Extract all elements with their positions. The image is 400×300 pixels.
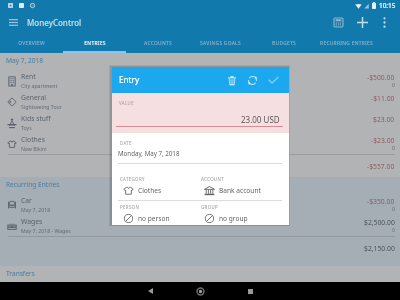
staticText: -$23.00 <box>371 136 395 145</box>
staticText: Clothes <box>138 186 162 195</box>
staticText: Sightseeing Tour <box>21 103 62 110</box>
button[interactable]: Save entry <box>263 70 284 91</box>
button[interactable]: Navigation menu <box>5 14 22 31</box>
button[interactable]: Car <box>0 194 400 215</box>
staticText: ACCOUNTS <box>144 40 172 47</box>
button[interactable]: Wages <box>0 215 400 236</box>
staticText: 10:15 <box>379 1 396 10</box>
button[interactable]: Delete entry <box>221 70 242 91</box>
staticText: May 7, 2018 - Wages <box>21 227 71 234</box>
button[interactable]: SAVINGS GOALS <box>189 34 252 53</box>
staticText: no group <box>219 214 248 223</box>
staticText: General <box>21 93 47 102</box>
staticText: no person <box>138 214 170 223</box>
staticText: RECURRING ENTRIES <box>320 40 373 47</box>
staticText: VALUE <box>119 100 134 106</box>
staticText: BUDGETS <box>272 40 296 47</box>
staticText: City apartment <box>21 82 58 89</box>
staticText: Toys <box>21 124 32 131</box>
staticText: $2,150.00 <box>364 244 395 253</box>
staticText: 0 <box>392 82 395 89</box>
staticText: Clothes <box>21 135 45 144</box>
staticText: DATE <box>120 140 132 146</box>
button[interactable]: Make recurring <box>242 70 263 91</box>
staticText: Kids stuff <box>21 114 51 123</box>
staticText: May 7, 2018 <box>6 56 44 65</box>
button[interactable]: OVERVIEW <box>0 34 63 53</box>
staticText: -$557.00 <box>367 162 395 171</box>
button[interactable]: Calculator <box>329 13 348 32</box>
staticText: $2,500.00 <box>364 218 395 227</box>
staticText: PERSON <box>120 204 140 210</box>
button[interactable]: PERSON <box>120 204 202 224</box>
staticText: -$11.00 <box>371 94 395 103</box>
button[interactable]: General <box>0 91 400 112</box>
staticText: ENTRIES <box>84 40 106 47</box>
staticText: Rent <box>21 72 36 81</box>
button[interactable]: GROUP <box>201 204 283 224</box>
staticText: ACCOUNT <box>201 176 224 182</box>
staticText: New Bikini <box>21 145 47 152</box>
button[interactable]: Rent <box>0 70 400 91</box>
staticText: Entry <box>119 74 140 85</box>
staticText: 0 <box>392 145 395 152</box>
staticText: GROUP <box>201 204 218 210</box>
staticText: $23.00 <box>373 115 395 124</box>
button[interactable]: More options <box>376 14 393 31</box>
staticText: CATEGORY <box>120 176 145 182</box>
button[interactable]: ENTRIES <box>63 34 126 53</box>
staticText: May 7, 2018 <box>21 206 51 213</box>
staticText: SAVINGS GOALS <box>200 40 241 47</box>
staticText: Bank account <box>219 186 261 195</box>
staticText: Wages <box>21 217 43 226</box>
button[interactable]: Recent apps <box>225 282 275 300</box>
staticText: Car <box>21 196 32 205</box>
button[interactable]: Kids stuff <box>0 112 400 133</box>
staticText: 23.00 USD <box>241 114 280 125</box>
button[interactable]: Add entry <box>353 13 372 32</box>
button[interactable]: ACCOUNTS <box>126 34 189 53</box>
staticText: -$350.00 <box>367 197 395 206</box>
staticText: Transfers <box>6 269 35 278</box>
staticText: Monday, May 7, 2018 <box>118 149 180 157</box>
button[interactable]: Back <box>125 282 175 300</box>
button[interactable]: CATEGORY <box>120 176 202 196</box>
button[interactable]: ACCOUNT <box>201 176 283 196</box>
staticText: 0 <box>392 206 395 213</box>
button[interactable]: Home <box>175 282 225 300</box>
staticText: OVERVIEW <box>18 40 45 47</box>
button[interactable]: RECURRING ENTRIES <box>315 34 378 53</box>
button[interactable]: Clothes <box>0 133 400 154</box>
staticText: -$500.00 <box>367 73 395 82</box>
button[interactable]: BUDGETS <box>252 34 315 53</box>
staticText: 0 <box>392 227 395 234</box>
staticText: MoneyControl <box>27 17 82 28</box>
staticText: Recurring Entries <box>6 180 60 189</box>
